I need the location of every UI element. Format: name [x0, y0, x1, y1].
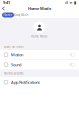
button[interactable]: Sound: [0, 60, 79, 69]
staticText: Home Mode: [28, 6, 51, 11]
button[interactable]: Away Mode: [14, 12, 29, 17]
button[interactable]: App Notifications: [0, 77, 79, 87]
button[interactable]: Back: [0, 5, 7, 11]
button[interactable]: Home: [2, 12, 14, 17]
staticText: Home: [3, 13, 12, 17]
staticText: ıll ᯤ ▮: [65, 0, 76, 5]
button[interactable]: Motion: [0, 50, 79, 59]
staticText: Home Mode: [31, 35, 48, 38]
button[interactable]: Home Mode: [33, 21, 45, 33]
staticText: 9:41: [3, 0, 10, 5]
staticText: Motion: [11, 52, 23, 57]
staticText: NOTIFICATIONS: [4, 72, 23, 75]
staticText: ALERT SETTINGS: [4, 45, 23, 48]
staticText: Sound: [11, 62, 21, 67]
staticText: App Notifications: [11, 79, 40, 85]
staticText: Away Mode: [14, 13, 29, 17]
